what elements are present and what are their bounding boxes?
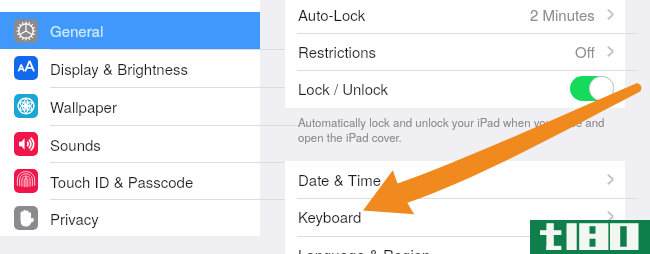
staticText: Privacy (50, 208, 99, 229)
staticText: Lock / Unlock (298, 78, 389, 99)
staticText: Touch ID & Passcode (50, 171, 194, 192)
staticText: Automatically lock and unlock your iPad … (298, 114, 613, 145)
staticText: Language & Region (298, 244, 431, 254)
button[interactable]: General (0, 12, 260, 49)
button[interactable]: Restrictions (285, 33, 625, 70)
button[interactable]: Lock / Unlock (285, 70, 625, 107)
button[interactable]: Sounds (0, 125, 260, 163)
staticText: General (50, 20, 104, 41)
staticText: Sounds (50, 134, 101, 155)
button[interactable]: Lock / Unlock toggle, on (570, 76, 614, 101)
staticText: Display & Brightness (50, 58, 189, 79)
button[interactable]: Keyboard (285, 198, 625, 235)
button[interactable]: Touch ID & Passcode (0, 162, 260, 200)
staticText: Date & Time (298, 169, 382, 190)
button[interactable]: Wallpaper (0, 87, 260, 125)
staticText: 2 Minutes (530, 4, 595, 25)
button[interactable]: Auto-Lock (285, 0, 625, 33)
button[interactable]: Date & Time (285, 161, 625, 198)
staticText: Off (575, 41, 595, 62)
staticText: Wallpaper (50, 96, 117, 117)
button[interactable]: Display & Brightness (0, 49, 260, 87)
button[interactable]: Privacy (0, 199, 260, 237)
staticText: Restrictions (298, 41, 377, 62)
staticText: Keyboard (298, 206, 362, 227)
staticText: Auto-Lock (298, 4, 366, 25)
button[interactable]: Language & Region (285, 236, 625, 254)
